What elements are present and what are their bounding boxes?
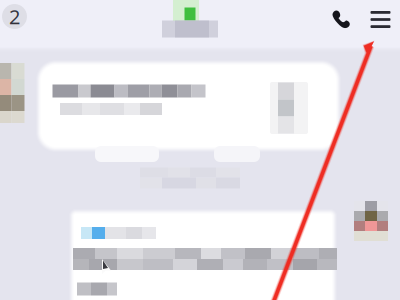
staticText: 2 (9, 3, 20, 30)
button[interactable] (37, 61, 340, 151)
button[interactable]: Menu (361, 0, 400, 47)
button[interactable]: Back (0, 0, 43, 50)
button[interactable]: Call (322, 0, 361, 47)
button[interactable] (70, 210, 336, 300)
